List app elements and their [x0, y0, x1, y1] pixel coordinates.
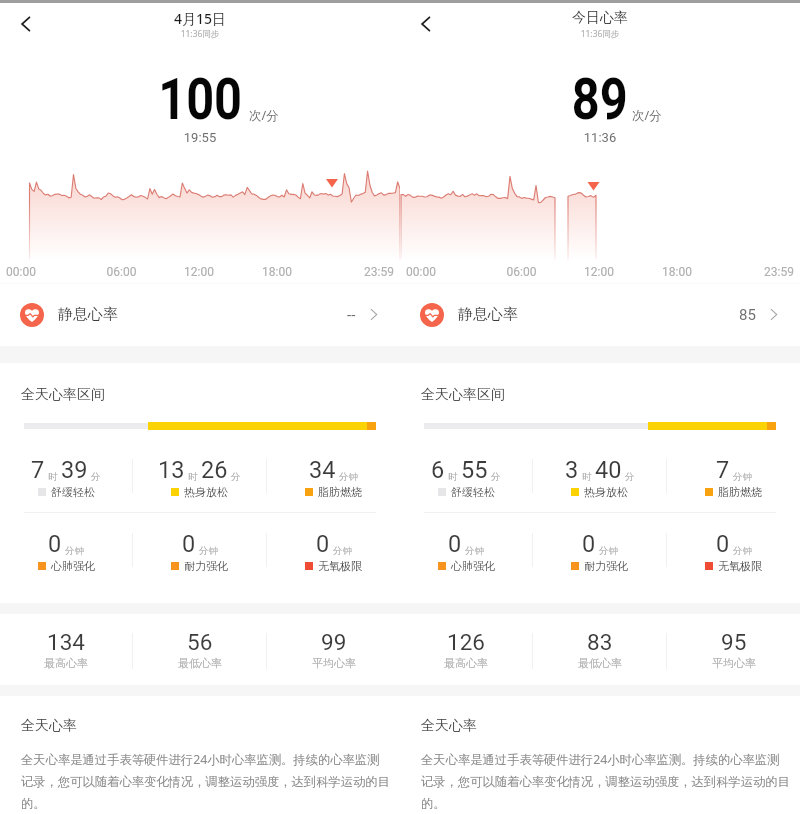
staticText: --: [347, 306, 356, 324]
staticText: 0: [182, 530, 196, 558]
staticText: 0: [316, 530, 330, 558]
staticText: 耐力强化: [184, 559, 228, 573]
staticText: 平均心率: [712, 656, 756, 670]
staticText: 19:55: [0, 130, 400, 145]
staticText: 全天心率: [421, 717, 477, 735]
staticText: 100: [158, 66, 243, 133]
staticText: 4月15日: [0, 9, 400, 28]
staticText: 分: [231, 471, 241, 483]
staticText: 分钟: [339, 471, 358, 483]
staticText: 时: [188, 471, 198, 483]
staticText: 热身放松: [184, 485, 228, 499]
staticText: 热身放松: [584, 485, 628, 499]
staticText: 全天心率区间: [21, 386, 105, 404]
staticText: 55: [461, 456, 488, 484]
staticText: 分钟: [733, 545, 752, 557]
staticText: 6: [431, 456, 445, 484]
staticText: 静息心率: [458, 305, 518, 324]
staticText: 全天心率是通过手表等硬件进行24小时心率监测。持续的心率监测记录，您可以随着心率…: [421, 751, 791, 812]
staticText: 7: [31, 456, 45, 484]
staticText: 18:00: [238, 265, 316, 279]
staticText: 全天心率: [21, 717, 77, 735]
staticText: 11:36同步: [0, 28, 400, 40]
staticText: 06:00: [483, 265, 560, 279]
staticText: 舒缓轻松: [451, 485, 495, 499]
staticText: 无氧极限: [318, 559, 362, 573]
staticText: 分钟: [199, 545, 218, 557]
staticText: 次/分: [632, 107, 662, 124]
staticText: 最低心率: [178, 656, 222, 670]
staticText: 分钟: [465, 545, 484, 557]
staticText: 分: [91, 471, 101, 483]
staticText: 26: [201, 456, 228, 484]
staticText: 分钟: [599, 545, 618, 557]
staticText: 40: [595, 456, 622, 484]
staticText: 脂肪燃烧: [318, 485, 362, 499]
staticText: 分钟: [333, 545, 352, 557]
staticText: 分: [491, 471, 501, 483]
staticText: 12:00: [160, 265, 238, 279]
staticText: 3: [565, 456, 579, 484]
staticText: 134: [47, 629, 85, 655]
staticText: 0: [716, 530, 730, 558]
staticText: 最低心率: [578, 656, 622, 670]
staticText: 全天心率区间: [421, 386, 505, 404]
staticText: 时: [582, 471, 592, 483]
staticText: 11:36同步: [400, 28, 800, 40]
staticText: 分: [625, 471, 635, 483]
staticText: 分钟: [65, 545, 84, 557]
staticText: 06:00: [83, 265, 160, 279]
staticText: 最高心率: [44, 656, 88, 670]
staticText: 00:00: [6, 265, 83, 279]
staticText: 0: [582, 530, 596, 558]
staticText: 85: [739, 306, 756, 324]
staticText: 00:00: [406, 265, 483, 279]
staticText: 最高心率: [444, 656, 488, 670]
staticText: 静息心率: [58, 305, 118, 324]
staticText: 99: [321, 629, 347, 655]
staticText: 34: [309, 456, 336, 484]
staticText: 脂肪燃烧: [718, 485, 762, 499]
staticText: 心肺强化: [51, 559, 95, 573]
button[interactable]: Back: [10, 8, 42, 40]
staticText: 舒缓轻松: [51, 485, 95, 499]
staticText: 23:59: [716, 265, 794, 279]
staticText: 7: [716, 456, 730, 484]
staticText: 89: [572, 66, 628, 133]
staticText: 39: [61, 456, 88, 484]
staticText: 95: [721, 629, 747, 655]
staticText: 平均心率: [312, 656, 356, 670]
staticText: 分钟: [733, 471, 752, 483]
staticText: 心肺强化: [451, 559, 495, 573]
staticText: 0: [448, 530, 462, 558]
staticText: 耐力强化: [584, 559, 628, 573]
button[interactable]: 静息心率: [400, 292, 800, 337]
staticText: 13: [158, 456, 185, 484]
staticText: 无氧极限: [718, 559, 762, 573]
staticText: 126: [447, 629, 485, 655]
button[interactable]: Back: [410, 8, 442, 40]
staticText: 56: [187, 629, 213, 655]
staticText: 18:00: [638, 265, 716, 279]
staticText: 次/分: [249, 107, 279, 124]
staticText: 83: [587, 629, 613, 655]
staticText: 12:00: [560, 265, 638, 279]
staticText: 0: [48, 530, 62, 558]
staticText: 时: [448, 471, 458, 483]
staticText: 全天心率是通过手表等硬件进行24小时心率监测。持续的心率监测记录，您可以随着心率…: [21, 751, 391, 812]
button[interactable]: 静息心率: [0, 292, 400, 337]
staticText: 时: [48, 471, 58, 483]
staticText: 11:36: [400, 130, 800, 145]
staticText: 23:59: [316, 265, 394, 279]
staticText: 今日心率: [400, 9, 800, 27]
